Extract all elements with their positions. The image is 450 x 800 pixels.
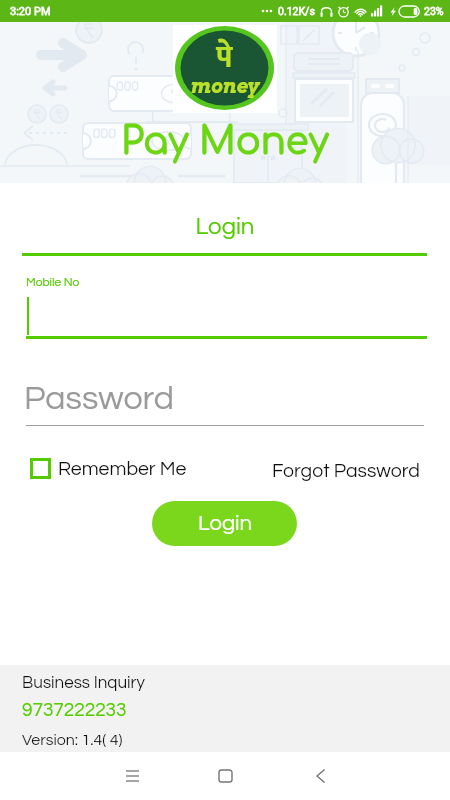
staticText: Version: 1.4( 4) — [22, 732, 123, 748]
staticText: Login — [0, 214, 450, 239]
staticText: Login — [198, 512, 252, 535]
staticText: 0.12K/s — [278, 5, 315, 17]
button[interactable]: Remember Me — [30, 458, 187, 479]
button[interactable]: Forgot Password — [272, 461, 420, 481]
button[interactable]: Back — [296, 752, 344, 800]
staticText: 3:20 PM — [10, 5, 51, 18]
staticText: Pay Money — [0, 121, 450, 162]
staticText: 23% — [424, 5, 444, 17]
staticText: Password — [24, 381, 175, 416]
button[interactable]: Home — [201, 752, 249, 800]
staticText: Business Inquiry — [22, 674, 145, 692]
staticText: पे — [175, 32, 274, 84]
button[interactable]: 9737222233 — [22, 700, 127, 720]
button[interactable]: Recent apps — [108, 752, 157, 800]
button[interactable]: Login — [152, 501, 297, 546]
staticText: Mobile No — [26, 276, 80, 288]
staticText: Remember Me — [58, 459, 187, 479]
staticText: money — [175, 74, 274, 98]
